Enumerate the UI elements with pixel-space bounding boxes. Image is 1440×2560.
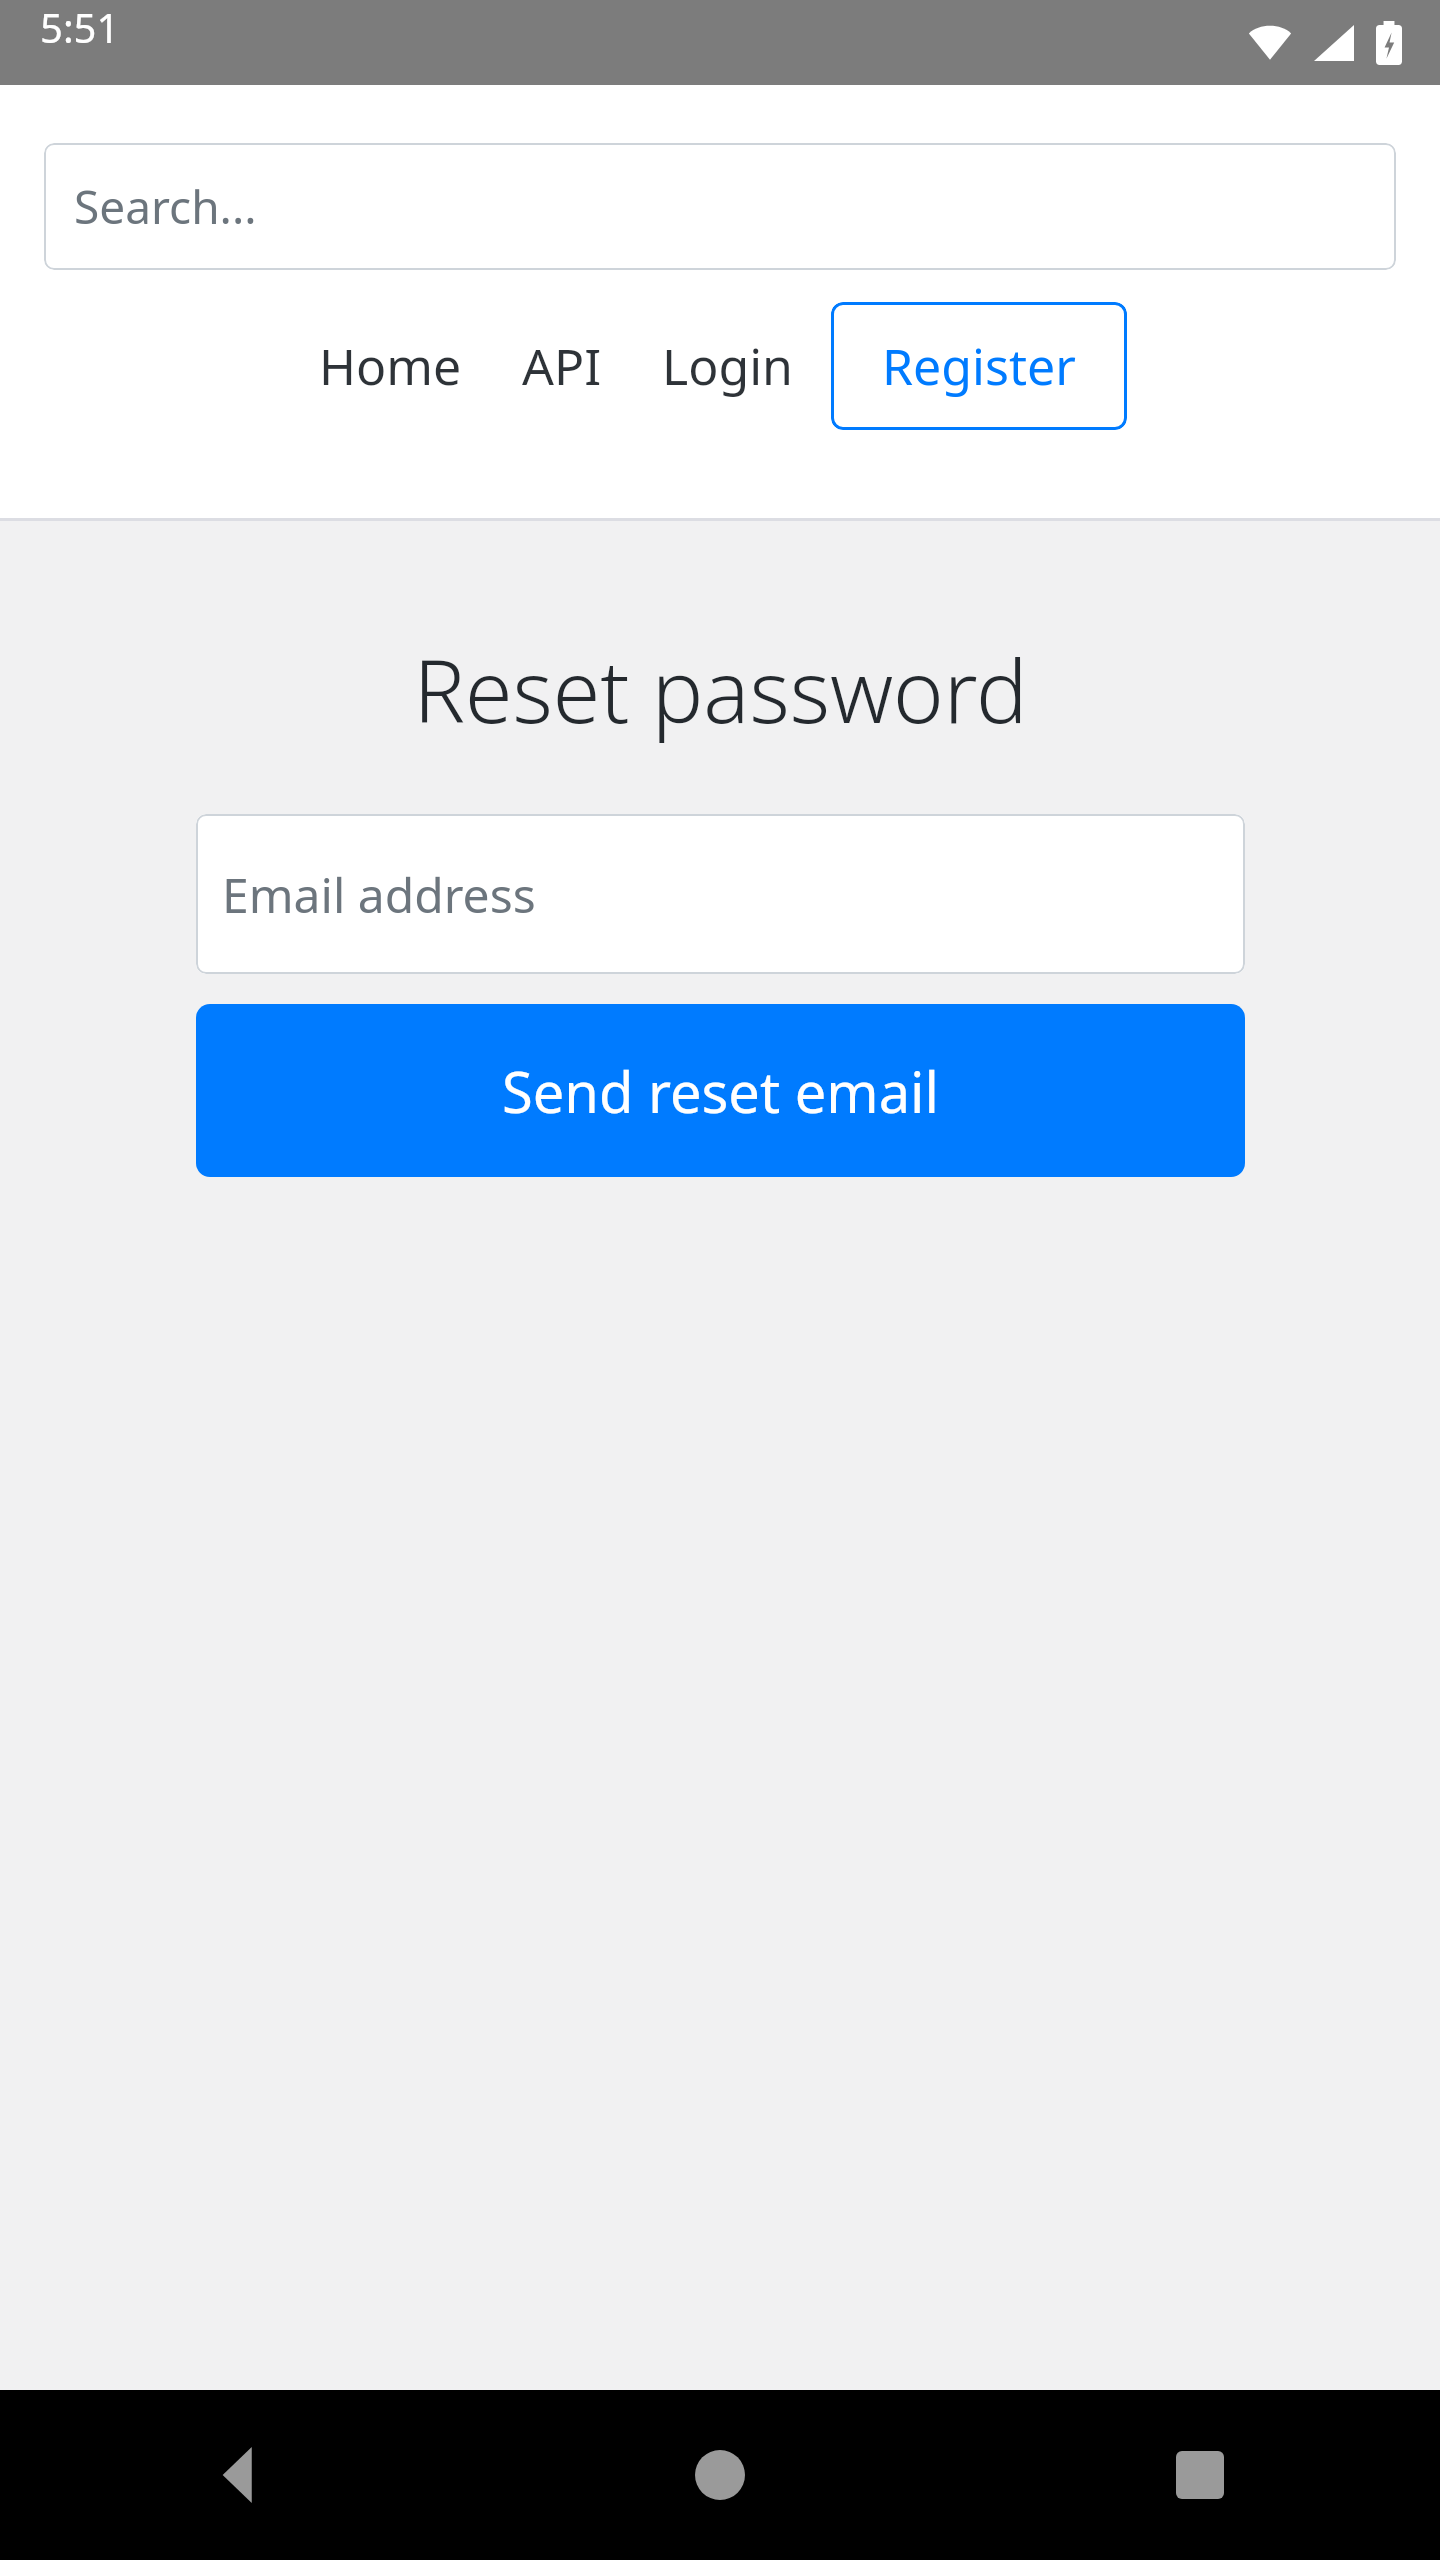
- button[interactable]: Send reset email: [196, 1004, 1245, 1177]
- button[interactable]: Email address: [196, 814, 1245, 974]
- staticText: 5:51: [40, 0, 1440, 54]
- staticText: Login: [662, 332, 793, 400]
- staticText: Reset password: [413, 631, 1028, 748]
- staticText: Home: [319, 332, 462, 400]
- staticText: Search...: [74, 175, 257, 238]
- staticText: Send reset email: [502, 1053, 939, 1129]
- staticText: Email address: [222, 862, 536, 927]
- button[interactable]: Home: [313, 318, 468, 414]
- button[interactable]: Register: [831, 302, 1127, 430]
- button[interactable]: Home: [480, 2390, 960, 2560]
- button[interactable]: Back: [0, 2390, 480, 2560]
- button[interactable]: Recent apps: [960, 2390, 1440, 2560]
- staticText: Register: [882, 332, 1076, 400]
- staticText: API: [522, 332, 602, 400]
- button[interactable]: API: [516, 318, 608, 414]
- button[interactable]: Search...: [44, 143, 1396, 270]
- button[interactable]: Login: [656, 318, 799, 414]
